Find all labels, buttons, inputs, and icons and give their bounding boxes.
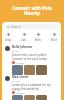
staticText: Dogs xyxy=(5,38,12,42)
staticText: Bella Johnson xyxy=(12,45,33,49)
button[interactable]: Bella Johnson xyxy=(5,45,58,75)
staticText: More xyxy=(51,38,58,42)
staticText: Max Carter xyxy=(12,75,29,79)
staticText: 5h ago xyxy=(12,79,20,82)
staticText: 24 likes xyxy=(16,91,25,94)
staticText: Search xyxy=(11,25,21,29)
button[interactable]: Dogs xyxy=(4,32,13,42)
staticText: Cats xyxy=(21,38,27,42)
button[interactable]: More xyxy=(50,32,59,42)
button[interactable]: Max Carter xyxy=(5,75,58,100)
staticText: 24 likes xyxy=(16,61,25,64)
staticText: Birds xyxy=(35,38,42,42)
button[interactable]: Search xyxy=(5,24,58,29)
staticText: Looking for a playdate for my puppy this… xyxy=(12,83,58,90)
button[interactable]: Birds xyxy=(34,32,43,42)
staticText: Connect with Pets Nearby xyxy=(12,5,52,17)
staticText: Just met the cutest golden retriever at … xyxy=(12,53,58,60)
staticText: 2h ago xyxy=(12,49,20,52)
button[interactable]: Cats xyxy=(20,32,28,42)
